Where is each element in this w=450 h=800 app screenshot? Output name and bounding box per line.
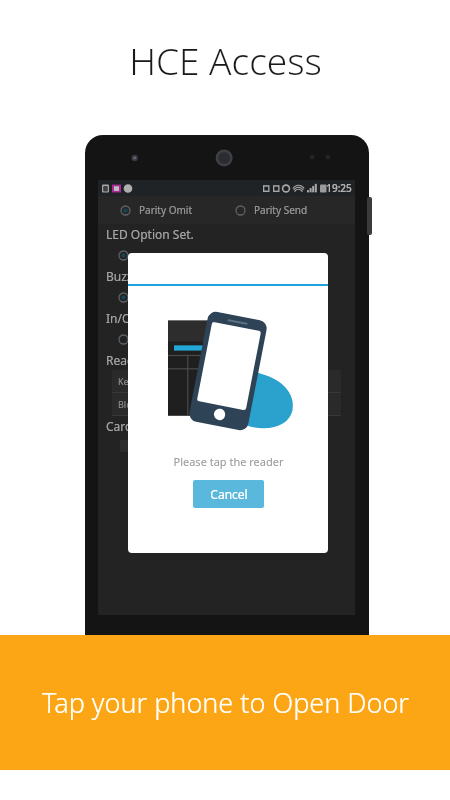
staticText: Cancel [210, 486, 248, 502]
staticText: Please tap the reader [173, 454, 284, 469]
staticText: Card Option [106, 418, 175, 434]
staticText: In/Out Option [106, 310, 186, 326]
button[interactable]: Cancel [193, 480, 264, 508]
staticText: Block [118, 398, 141, 410]
other: Tap phone to reader [153, 301, 303, 441]
staticText: Settings [233, 473, 268, 485]
staticText: Parity Send [254, 203, 308, 217]
staticText: Tap your phone to Open Door [42, 684, 409, 721]
staticText: 19:25 [326, 181, 352, 195]
button[interactable]: Settings [231, 468, 269, 490]
staticText: HCE Access [129, 35, 322, 85]
staticText: Buzzer Option [106, 268, 187, 284]
staticText: Key [118, 375, 134, 387]
staticText: Version [187, 473, 219, 485]
staticText: LED Option Set. [106, 226, 194, 242]
button[interactable]: Version [184, 468, 222, 490]
staticText: Parity Omit [139, 203, 193, 217]
staticText: Reader Option [106, 352, 189, 368]
